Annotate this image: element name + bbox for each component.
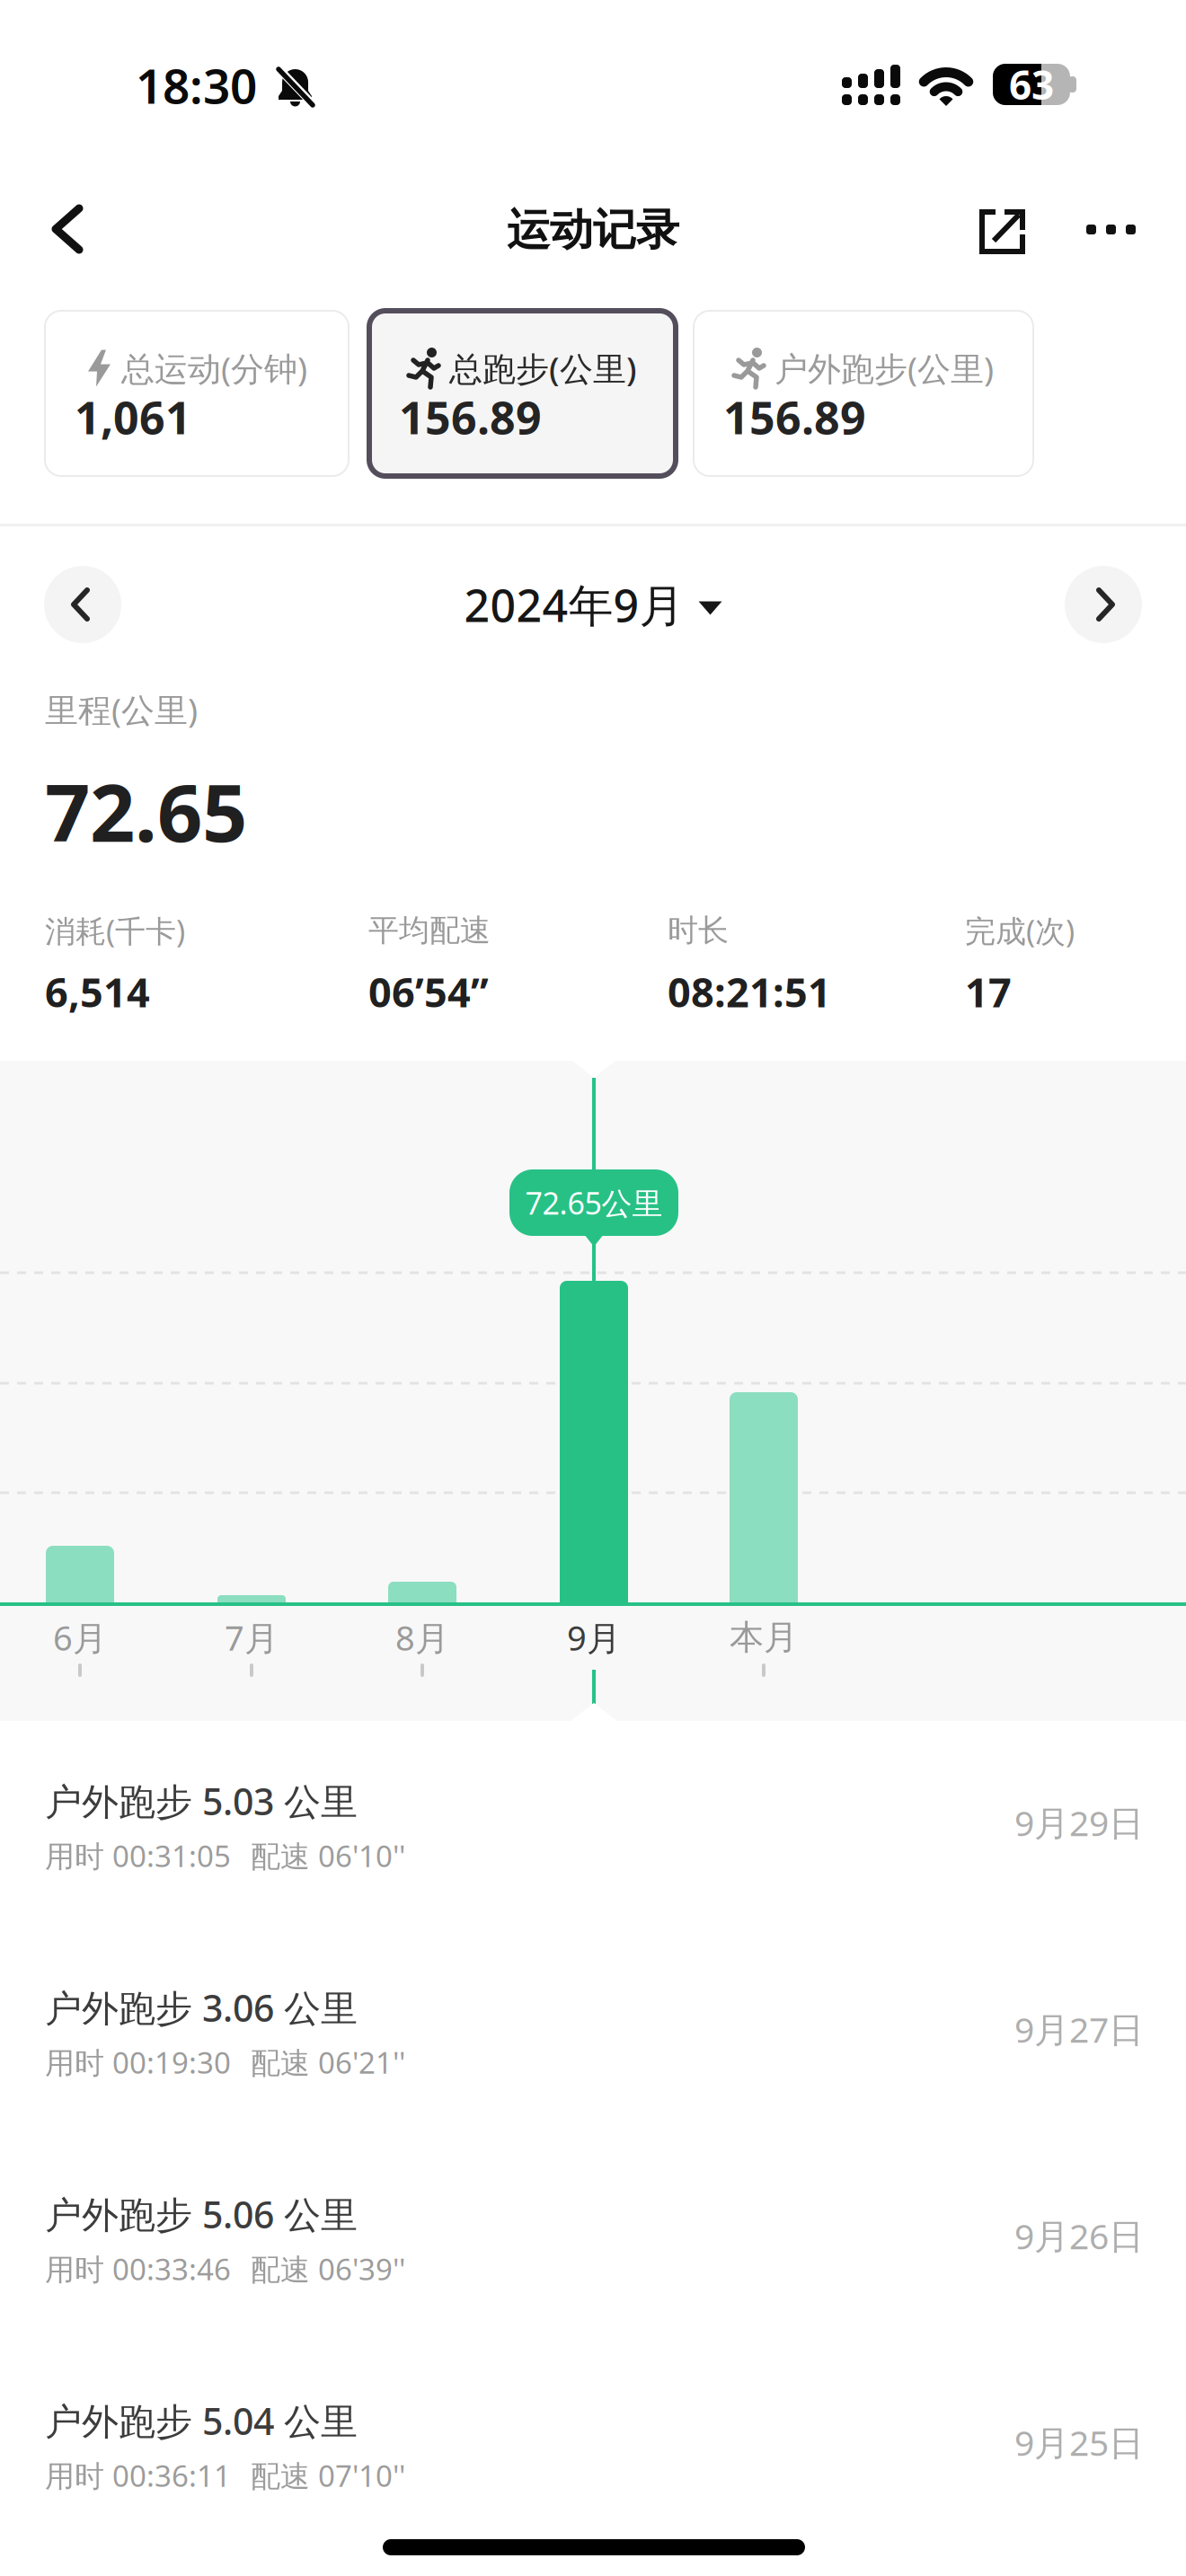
staticText: 18:30 <box>136 53 257 118</box>
button[interactable]: 户外跑步 3.06 公里 <box>0 0 1186 207</box>
staticText: 消耗(千卡) <box>45 910 185 951</box>
staticText: 用时 00:31:05 <box>45 1835 231 1876</box>
staticText: 平均配速 <box>368 911 491 950</box>
staticText: 156.89 <box>723 386 866 447</box>
staticText: 156.89 <box>399 386 542 447</box>
button[interactable]: 户外跑步 5.03 公里 <box>0 0 1186 207</box>
staticText: 配速 07'10'' <box>251 2455 405 2496</box>
button[interactable]: 总跑步(公里) <box>0 0 306 165</box>
button[interactable]: 总运动(分钟) <box>0 0 304 165</box>
staticText: 配速 06'10'' <box>251 1835 405 1876</box>
staticText: 9月29日 <box>1014 1799 1144 1846</box>
staticText: 2024年9月 <box>464 574 684 635</box>
staticText: 72.65 <box>45 757 247 865</box>
staticText: 63 <box>1009 57 1054 111</box>
staticText: 户外跑步(公里) <box>774 346 994 391</box>
staticText: 1,061 <box>75 386 191 447</box>
staticText: 9月27日 <box>1014 2005 1144 2053</box>
button[interactable]: 户外跑步 5.06 公里 <box>0 0 1186 207</box>
staticText: 时长 <box>668 911 729 950</box>
staticText: 06’54’’ <box>368 964 489 1019</box>
staticText: 用时 00:19:30 <box>45 2042 231 2082</box>
staticText: 7月 <box>225 1614 279 1661</box>
staticText: 用时 00:36:11 <box>45 2455 231 2496</box>
staticText: 总运动(分钟) <box>121 346 307 391</box>
staticText: 户外跑步 5.06 公里 <box>45 2189 358 2239</box>
staticText: 总跑步(公里) <box>449 346 637 391</box>
staticText: 户外跑步 3.06 公里 <box>45 1982 358 2033</box>
button[interactable]: 户外跑步(公里) <box>0 0 340 165</box>
staticText: 9月26日 <box>1014 2212 1144 2259</box>
staticText: 配速 06'39'' <box>251 2249 405 2289</box>
staticText: 用时 00:33:46 <box>45 2249 231 2289</box>
staticText: 运动记录 <box>507 203 679 257</box>
staticText: 配速 06'21'' <box>251 2042 405 2082</box>
staticText: 户外跑步 5.03 公里 <box>45 1776 358 1826</box>
button[interactable]: 户外跑步 5.04 公里 <box>0 0 1186 207</box>
staticText: 完成(次) <box>965 910 1075 951</box>
staticText: 8月 <box>395 1614 449 1661</box>
staticText: 里程(公里) <box>45 687 198 732</box>
staticText: 6月 <box>53 1614 107 1661</box>
staticText: 本月 <box>730 1616 798 1659</box>
staticText: 72.65公里 <box>525 1182 663 1223</box>
staticText: 户外跑步 5.04 公里 <box>45 2396 358 2446</box>
staticText: 17 <box>965 964 1012 1019</box>
staticText: 08:21:51 <box>668 964 831 1019</box>
staticText: 9月 <box>567 1614 621 1661</box>
staticText: 6,514 <box>45 964 150 1019</box>
staticText: 9月25日 <box>1014 2418 1144 2466</box>
